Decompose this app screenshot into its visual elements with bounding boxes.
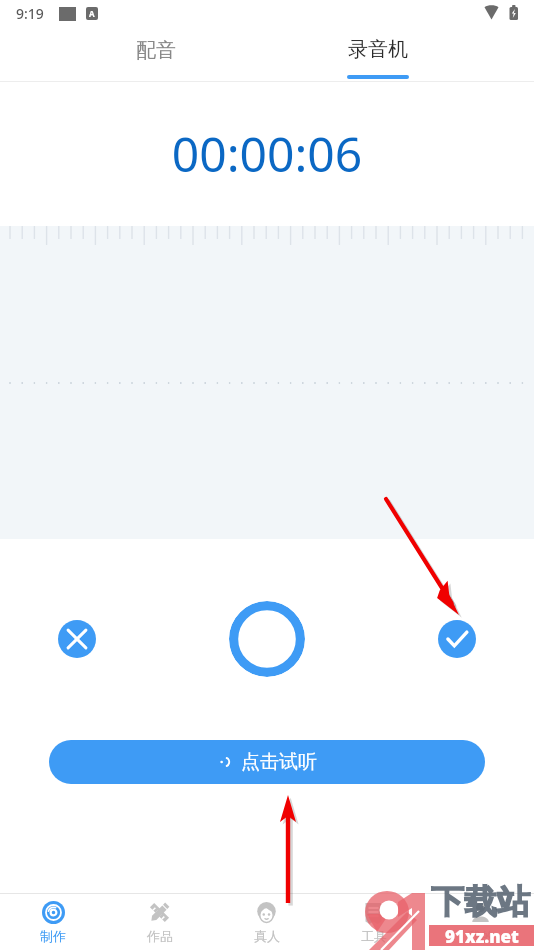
- staticText: 点击试听: [241, 750, 317, 774]
- staticText: A: [89, 8, 95, 19]
- button[interactable]: 我的: [427, 894, 534, 944]
- staticText: 制作: [40, 928, 66, 944]
- staticText: 00:00:06: [0, 121, 534, 186]
- staticText: 91xz.net: [445, 925, 519, 946]
- staticText: 配音: [136, 38, 176, 63]
- staticText: 真人: [254, 928, 280, 944]
- button[interactable]: Finish recording: [438, 620, 476, 658]
- staticText: 下载站: [431, 881, 530, 923]
- staticText: 9:19: [16, 4, 44, 23]
- button[interactable]: 配音: [76, 28, 236, 72]
- button[interactable]: 制作: [0, 894, 106, 944]
- staticText: 我的: [468, 928, 494, 944]
- button[interactable]: Record: [229, 601, 305, 677]
- button[interactable]: 作品: [106, 894, 213, 944]
- button[interactable]: 点击试听: [49, 740, 485, 784]
- button[interactable]: 录音机: [298, 28, 458, 82]
- staticText: 作品: [147, 928, 173, 944]
- button[interactable]: 真人: [213, 894, 320, 944]
- button[interactable]: Cancel recording: [58, 620, 96, 658]
- staticText: 录音机: [348, 37, 408, 62]
- staticText: 工具: [361, 928, 387, 944]
- button[interactable]: 工具: [320, 894, 427, 944]
